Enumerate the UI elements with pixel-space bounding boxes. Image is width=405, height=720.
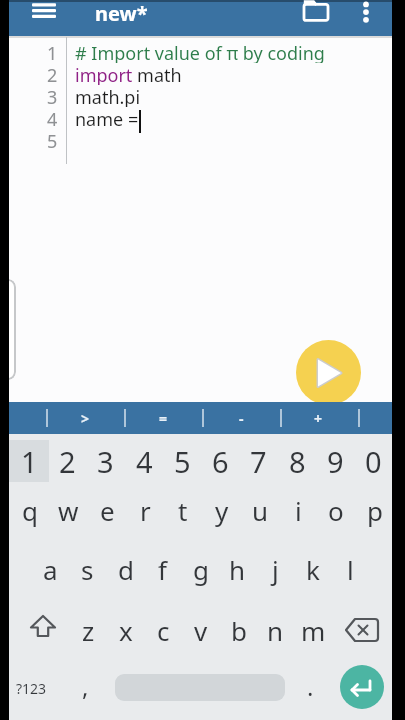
- staticText: +: [314, 409, 323, 428]
- button[interactable]: 6: [201, 439, 239, 483]
- button[interactable]: b: [220, 606, 257, 654]
- button[interactable]: +: [288, 402, 348, 434]
- button[interactable]: k: [294, 545, 331, 593]
- staticText: p: [367, 493, 383, 528]
- button[interactable]: 7: [239, 439, 277, 483]
- button[interactable]: p: [356, 486, 392, 534]
- staticText: t: [178, 493, 188, 528]
- staticText: ,: [82, 670, 89, 703]
- staticText: e: [100, 493, 115, 528]
- staticText: v: [194, 613, 208, 648]
- button[interactable]: [22, 610, 64, 650]
- staticText: 5: [47, 129, 58, 151]
- staticText: m: [301, 613, 326, 648]
- staticText: z: [82, 613, 95, 648]
- staticText: -: [239, 409, 244, 428]
- staticText: b: [231, 613, 247, 648]
- button[interactable]: t: [164, 486, 202, 534]
- staticText: u: [252, 493, 269, 528]
- button[interactable]: l: [332, 545, 369, 593]
- staticText: 9: [327, 442, 344, 481]
- staticText: 6: [212, 442, 229, 481]
- staticText: g: [193, 552, 209, 587]
- button[interactable]: n: [257, 606, 294, 654]
- staticText: h: [229, 552, 246, 587]
- button[interactable]: =: [133, 402, 193, 434]
- button[interactable]: u: [241, 486, 279, 534]
- staticText: new*: [95, 0, 148, 27]
- staticText: s: [81, 552, 94, 587]
- button[interactable]: [27, 0, 61, 24]
- staticText: a: [43, 552, 58, 587]
- staticText: 8: [289, 442, 306, 481]
- staticText: l: [347, 552, 354, 587]
- button[interactable]: 1: [10, 439, 48, 483]
- staticText: d: [118, 552, 134, 587]
- staticText: 2: [59, 442, 76, 481]
- staticText: 4: [47, 107, 58, 129]
- button[interactable]: -: [211, 402, 271, 434]
- button[interactable]: s: [69, 545, 106, 593]
- staticText: i: [295, 493, 302, 528]
- staticText: y: [215, 493, 229, 528]
- staticText: 4: [136, 442, 153, 481]
- button[interactable]: ?123: [9, 666, 55, 710]
- staticText: x: [119, 613, 133, 648]
- button[interactable]: [341, 610, 383, 650]
- button[interactable]: y: [203, 486, 241, 534]
- button[interactable]: v: [182, 606, 219, 654]
- button[interactable]: d: [107, 545, 144, 593]
- button[interactable]: q: [11, 486, 49, 534]
- button[interactable]: [298, 0, 334, 28]
- button[interactable]: j: [257, 545, 294, 593]
- button[interactable]: m: [295, 606, 332, 654]
- button[interactable]: [296, 340, 361, 405]
- staticText: w: [58, 493, 79, 528]
- button[interactable]: c: [145, 606, 182, 654]
- button[interactable]: 5: [163, 439, 201, 483]
- button[interactable]: x: [107, 606, 144, 654]
- staticText: =: [159, 409, 168, 428]
- staticText: o: [328, 493, 344, 528]
- button[interactable]: e: [88, 486, 126, 534]
- staticText: 1: [47, 41, 58, 63]
- button[interactable]: 4: [125, 439, 163, 483]
- staticText: q: [22, 493, 38, 528]
- staticText: 7: [250, 442, 267, 481]
- staticText: 1: [21, 442, 38, 481]
- button[interactable]: [353, 0, 379, 28]
- staticText: k: [306, 552, 320, 587]
- staticText: 0: [365, 442, 382, 481]
- button[interactable]: [340, 665, 384, 709]
- staticText: name =: [75, 107, 139, 129]
- button[interactable]: 3: [86, 439, 124, 483]
- button[interactable]: r: [126, 486, 164, 534]
- button[interactable]: 9: [316, 439, 354, 483]
- button[interactable]: h: [219, 545, 256, 593]
- staticText: 2: [47, 63, 58, 85]
- staticText: 3: [47, 85, 58, 107]
- button[interactable]: 0: [354, 439, 392, 483]
- button[interactable]: g: [182, 545, 219, 593]
- button[interactable]: w: [49, 486, 87, 534]
- staticText: # Import value of π by coding: [75, 41, 325, 63]
- button[interactable]: .: [292, 664, 328, 708]
- button[interactable]: o: [317, 486, 355, 534]
- button[interactable]: 2: [48, 439, 86, 483]
- staticText: math.pi: [75, 85, 141, 107]
- staticText: .: [307, 670, 314, 703]
- button[interactable]: 8: [278, 439, 316, 483]
- button[interactable]: >: [55, 402, 115, 434]
- button[interactable]: a: [32, 545, 69, 593]
- staticText: 5: [174, 442, 191, 481]
- staticText: r: [140, 493, 151, 528]
- staticText: c: [157, 613, 170, 648]
- button[interactable]: f: [144, 545, 181, 593]
- staticText: 3: [97, 442, 114, 481]
- button[interactable]: i: [279, 486, 317, 534]
- staticText: >: [81, 409, 90, 428]
- button[interactable]: ,: [67, 664, 103, 708]
- button[interactable]: z: [70, 606, 107, 654]
- staticText: j: [272, 552, 279, 587]
